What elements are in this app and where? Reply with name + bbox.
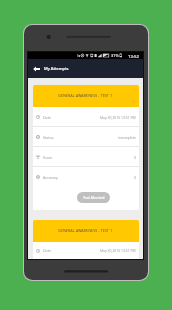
staticText: 31% [111,53,119,58]
staticText: Accuracy [43,175,58,180]
button[interactable]: Date [33,242,139,259]
button[interactable]: Score [33,147,139,167]
button[interactable]: Date [33,107,139,127]
staticText: Date [43,115,51,120]
staticText: Score [43,155,53,160]
staticText: May 30,2016 13:51 PM [100,248,136,253]
staticText: GENERAL AWARENESS - TEST 1 [58,93,113,98]
staticText: GENERAL AWARENESS - TEST 1 [58,228,113,233]
staticText: incomplete [118,135,136,140]
button[interactable]: GENERAL AWARENESS - TEST 1 [33,85,139,107]
staticText: Date [43,248,51,253]
button[interactable]: Accuracy [33,167,139,187]
staticText: 0 [134,155,136,160]
staticText: My Attempts [44,66,69,71]
staticText: Status [43,135,54,140]
staticText: 0 [134,175,136,180]
staticText: May 30,2016 13:51 PM [100,115,136,120]
button[interactable]: Back [28,59,44,78]
staticText: Test Aborted [83,195,105,200]
button[interactable]: Status [33,127,139,147]
staticText: 13:52 [128,53,139,59]
button[interactable]: GENERAL AWARENESS - TEST 1 [33,220,139,242]
button[interactable]: Test Aborted [77,192,110,203]
